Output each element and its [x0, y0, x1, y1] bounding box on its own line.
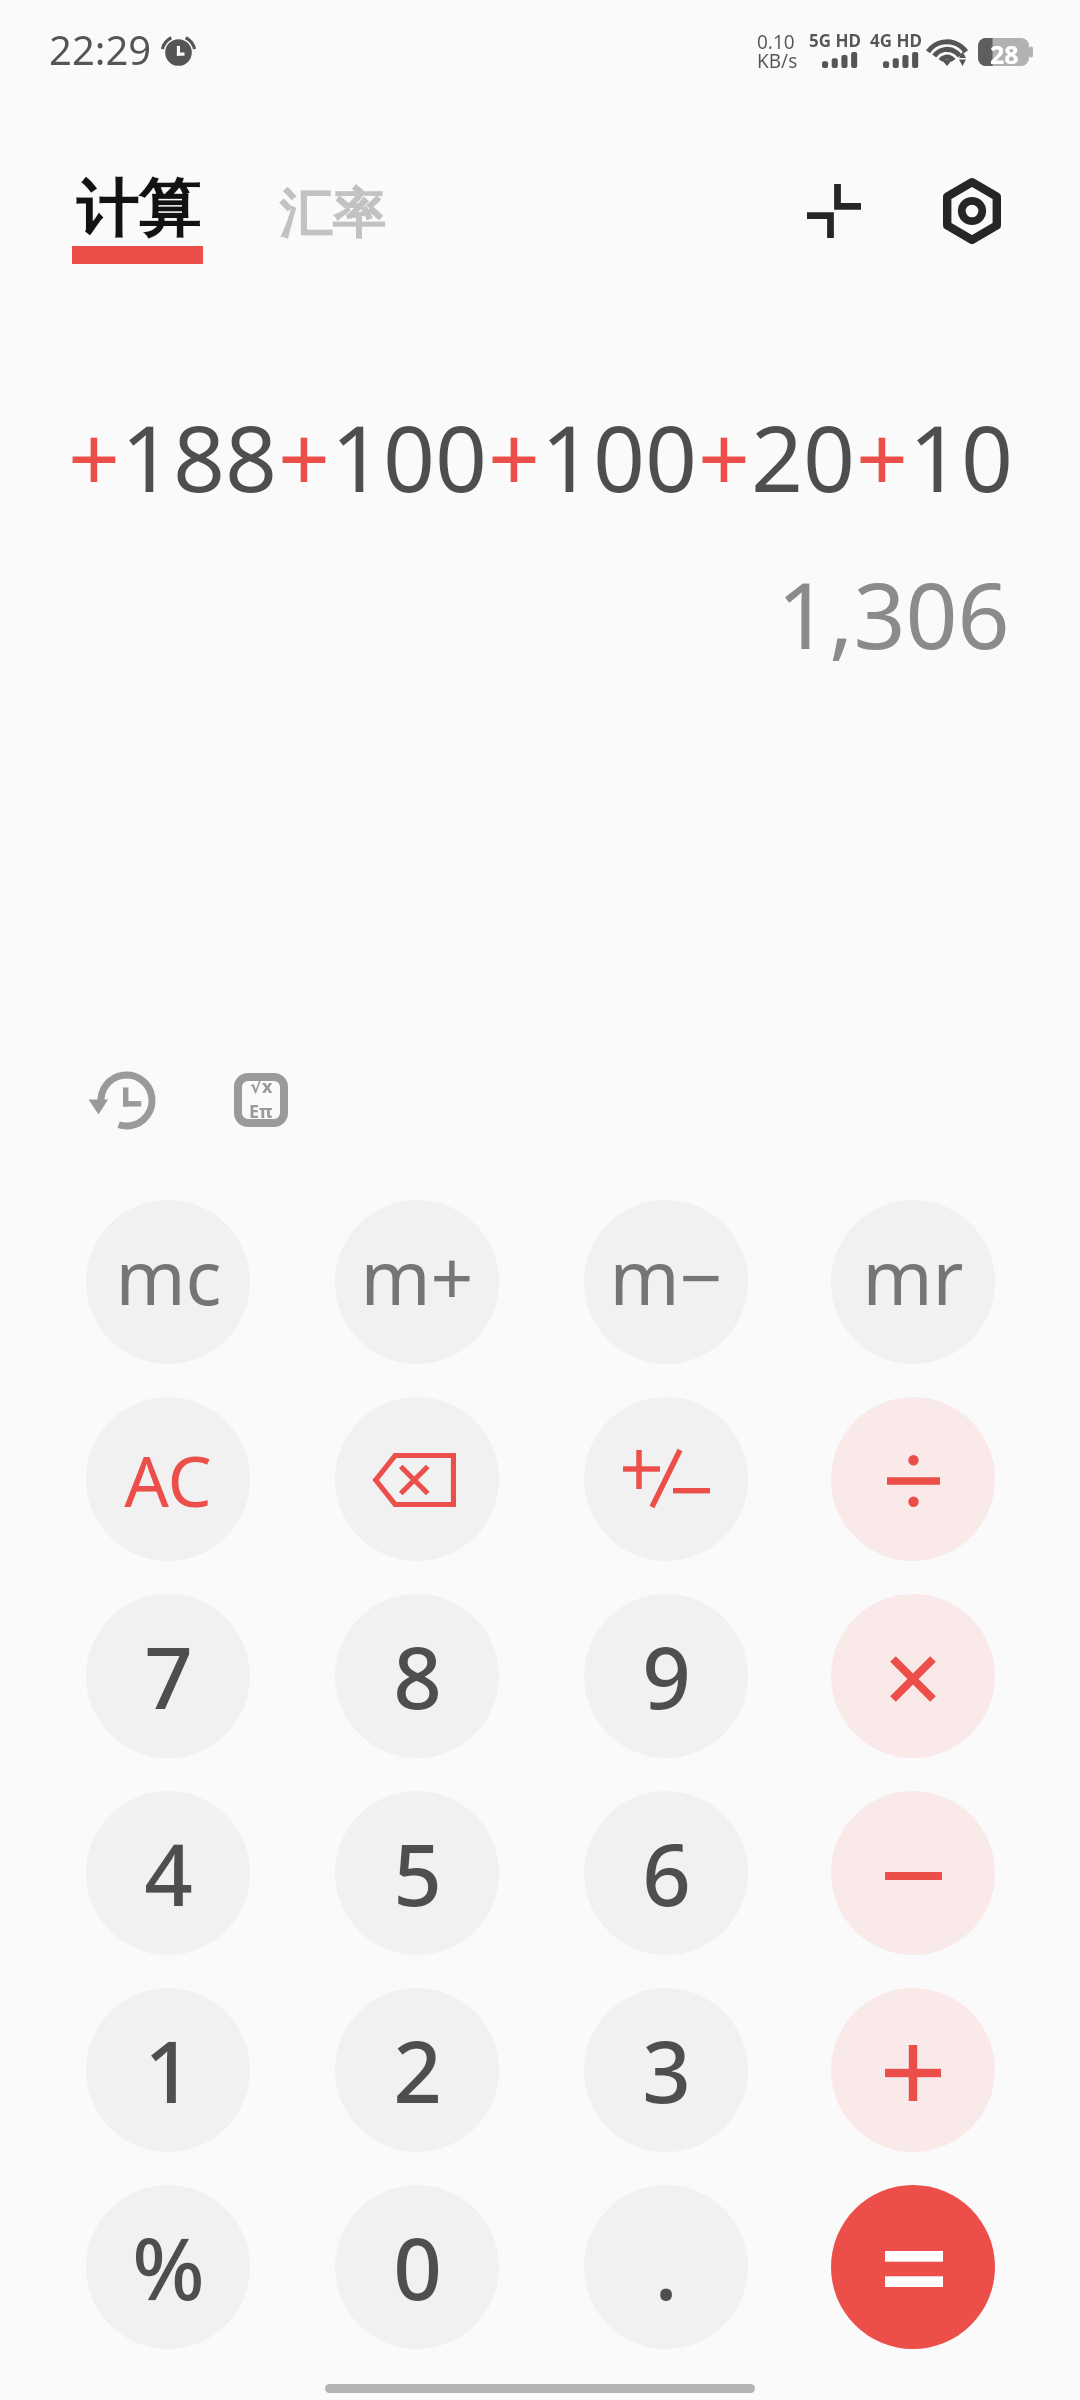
button[interactable]: . [584, 2185, 748, 2349]
staticText: + [698, 395, 751, 519]
button[interactable]: 2 [335, 1988, 499, 2152]
button[interactable]: plusminus [584, 1397, 748, 1561]
staticText: 汇率 [279, 181, 385, 248]
staticText: % [132, 2209, 205, 2325]
staticText: . [654, 2209, 678, 2325]
staticText: mr [862, 1225, 964, 1327]
button[interactable]: 3 [584, 1988, 748, 2152]
staticText: + [68, 395, 121, 519]
staticText: mc [115, 1225, 222, 1327]
button[interactable]: Settings [927, 166, 1017, 256]
staticText: + [488, 395, 541, 519]
button[interactable]: 8 [335, 1594, 499, 1758]
button[interactable]: 6 [584, 1791, 748, 1955]
staticText: AC [124, 1432, 212, 1527]
staticText: 5G HD [809, 29, 861, 52]
staticText: 8 [393, 1618, 442, 1734]
staticText: 3 [642, 2012, 691, 2128]
staticText: 6 [642, 1815, 691, 1931]
staticText: + [278, 395, 331, 519]
staticText: 100 [331, 395, 488, 519]
staticText: Eπ [249, 1099, 273, 1124]
button[interactable]: Equals [831, 2185, 995, 2349]
button[interactable]: 0 [335, 2185, 499, 2349]
button[interactable]: 1 [86, 1988, 250, 2152]
button[interactable]: 4 [86, 1791, 250, 1955]
button[interactable]: Divide [831, 1397, 995, 1561]
staticText: 2 [393, 2012, 442, 2128]
staticText: m− [609, 1225, 723, 1327]
staticText: KB/s [757, 48, 798, 74]
staticText: 计算 [76, 170, 200, 248]
button[interactable]: mc [86, 1200, 250, 1364]
button[interactable]: Multiply [831, 1594, 995, 1758]
staticText: 9 [642, 1618, 691, 1734]
button[interactable]: Minus [831, 1791, 995, 1955]
staticText: 188 [121, 395, 278, 519]
staticText: 10 [909, 395, 1014, 519]
staticText: 20 [751, 395, 856, 519]
staticText: 7 [144, 1618, 193, 1734]
button[interactable]: Plus [831, 1988, 995, 2152]
staticText: 28 [990, 37, 1019, 65]
staticText: + [856, 395, 909, 519]
staticText: 1,306 [777, 552, 1010, 676]
button[interactable]: m− [584, 1200, 748, 1364]
button[interactable]: 9 [584, 1594, 748, 1758]
staticText: √x [250, 1074, 273, 1099]
button[interactable]: Backspace [335, 1397, 499, 1561]
staticText: 4 [144, 1815, 193, 1931]
staticText: 5 [393, 1815, 442, 1931]
button[interactable]: 汇率 [279, 181, 385, 248]
button[interactable]: History [87, 1060, 167, 1140]
staticText: m+ [360, 1225, 474, 1327]
button[interactable]: 5 [335, 1791, 499, 1955]
button[interactable]: m+ [335, 1200, 499, 1364]
button[interactable]: Scientific functions [221, 1060, 301, 1140]
button[interactable]: 7 [86, 1594, 250, 1758]
button[interactable]: % [86, 2185, 250, 2349]
staticText: 0 [393, 2209, 442, 2325]
staticText: 4G HD [870, 29, 922, 52]
button[interactable]: 计算 [76, 170, 207, 266]
button[interactable]: mr [831, 1200, 995, 1364]
staticText: 0.10 [757, 29, 795, 55]
staticText: 100 [541, 395, 698, 519]
button[interactable]: AC [86, 1397, 250, 1561]
staticText: 22:29 [49, 22, 152, 76]
button[interactable]: Toggle scientific mode [789, 166, 879, 256]
staticText: 1 [144, 2012, 193, 2128]
